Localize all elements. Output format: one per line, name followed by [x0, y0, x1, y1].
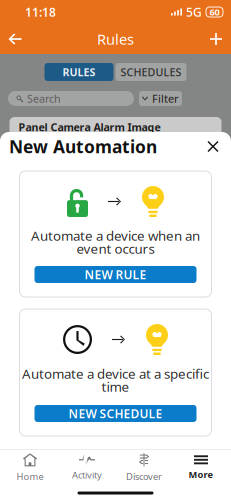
staticText: Activity — [72, 469, 102, 481]
staticText: NEW RULE — [84, 266, 146, 282]
staticText: SCHEDULES — [120, 65, 181, 79]
staticText: Home — [16, 470, 43, 483]
staticText: Automate a device at a specific — [22, 365, 209, 382]
button[interactable]: More — [172, 451, 229, 485]
staticText: NEW SCHEDULE — [68, 405, 162, 421]
button[interactable]: Home — [1, 451, 58, 485]
button[interactable]: Back — [0, 24, 30, 54]
staticText: event occurs — [76, 240, 154, 257]
staticText: New Automation — [9, 135, 157, 158]
staticText: Discover — [126, 470, 162, 483]
staticText: Search — [27, 91, 61, 106]
staticText: RULES — [62, 65, 95, 79]
button[interactable]: Activity — [58, 451, 115, 485]
staticText: Panel Camera Alarm Image — [18, 120, 160, 134]
staticText: 5G — [186, 4, 202, 20]
staticText: Automate a device when an — [31, 227, 200, 244]
button[interactable]: NEW SCHEDULE — [34, 405, 196, 422]
button[interactable]: Close — [199, 132, 227, 160]
staticText: time — [101, 378, 129, 395]
button[interactable]: NEW RULE — [34, 266, 196, 283]
staticText: Rules — [97, 29, 134, 49]
staticText: Filter — [152, 91, 179, 106]
button[interactable]: Add automation — [201, 24, 231, 54]
staticText: 11:18 — [25, 4, 56, 20]
staticText: More — [188, 468, 213, 481]
staticText: 60 — [209, 6, 219, 18]
button[interactable]: Discover — [115, 451, 172, 485]
